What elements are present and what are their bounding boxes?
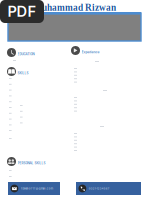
staticText: Experience (81, 50, 99, 54)
staticText: rizwan0717@gmail.com (21, 187, 53, 190)
staticText: Muhammad Rizwan (33, 2, 116, 13)
staticText: PERSONAL SKILLS (17, 161, 45, 165)
staticText: SKILLS (17, 71, 28, 75)
staticText: EDUCATION (17, 52, 34, 56)
staticText: 0321-1234567 (89, 187, 110, 190)
button[interactable]: Email (8, 182, 60, 195)
button[interactable]: Phone (76, 182, 141, 195)
staticText: PDF (7, 3, 36, 20)
